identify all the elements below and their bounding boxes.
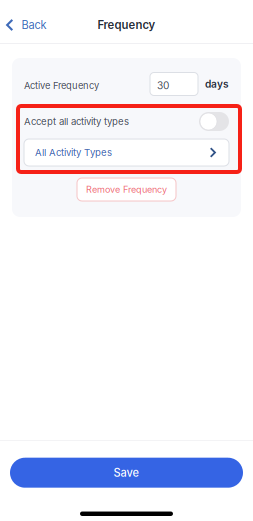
button[interactable]: All Activity Types — [24, 139, 229, 166]
button[interactable]: Remove Frequency — [77, 178, 176, 201]
staticText: Active Frequency — [24, 80, 99, 91]
staticText: Save — [113, 466, 139, 479]
staticText: 30 — [157, 79, 169, 92]
staticText: Accept all activity types — [24, 116, 129, 127]
staticText: Remove Frequency — [86, 184, 167, 195]
staticText: Back — [21, 18, 46, 32]
button[interactable]: Back — [0, 8, 56, 42]
button[interactable]: Save — [10, 458, 243, 488]
button[interactable]: Accept all activity types — [199, 112, 229, 131]
staticText: days — [205, 78, 229, 90]
staticText: Frequency — [97, 18, 155, 32]
staticText: All Activity Types — [35, 147, 112, 158]
